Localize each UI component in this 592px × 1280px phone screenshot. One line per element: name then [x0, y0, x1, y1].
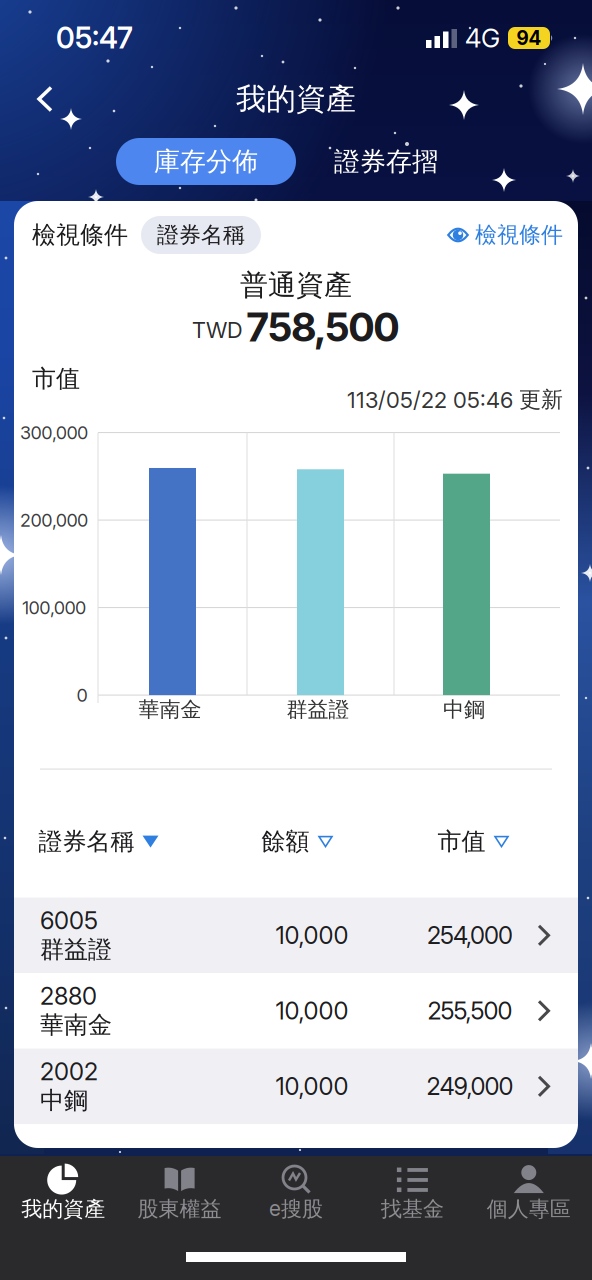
- staticText: 中鋼: [443, 697, 485, 722]
- staticText: 中鋼: [40, 1086, 88, 1115]
- staticText: 市值: [32, 364, 80, 394]
- staticText: 300,000: [20, 422, 88, 443]
- staticText: 254,000: [427, 921, 513, 949]
- button[interactable]: 證券存摺: [296, 138, 476, 185]
- staticText: 證券名稱: [38, 827, 134, 856]
- staticText: TWD: [192, 317, 243, 343]
- staticText: 華南金: [40, 1010, 112, 1040]
- staticText: 普通資產: [240, 268, 352, 302]
- button[interactable]: 6005: [14, 898, 578, 973]
- staticText: 檢視條件: [32, 220, 128, 250]
- staticText: 05:47: [56, 21, 133, 55]
- button[interactable]: Back: [0, 86, 53, 112]
- staticText: 4G: [465, 23, 500, 53]
- staticText: 市值: [437, 827, 485, 856]
- staticText: 100,000: [22, 597, 86, 618]
- button[interactable]: e搜股: [238, 1156, 354, 1222]
- staticText: 200,000: [20, 509, 88, 531]
- staticText: 庫存分佈: [154, 145, 258, 177]
- button[interactable]: 我的資產: [5, 1156, 121, 1222]
- button[interactable]: 證券名稱: [141, 216, 261, 254]
- button[interactable]: 餘額: [261, 827, 333, 856]
- staticText: 255,500: [427, 997, 512, 1025]
- staticText: 證券名稱: [157, 221, 245, 248]
- staticText: 249,000: [426, 1072, 513, 1100]
- staticText: 94: [516, 27, 541, 49]
- button[interactable]: 股東權益: [121, 1156, 238, 1222]
- staticText: 股東權益: [138, 1196, 222, 1222]
- staticText: 10,000: [275, 997, 348, 1025]
- staticText: 6005: [40, 906, 98, 935]
- button[interactable]: 市值: [437, 827, 509, 856]
- staticText: 檢視條件: [475, 221, 563, 248]
- staticText: 群益證: [40, 935, 112, 964]
- button[interactable]: 檢視條件: [447, 221, 563, 248]
- staticText: 群益證: [286, 697, 349, 722]
- staticText: 758,500: [246, 303, 400, 351]
- button[interactable]: 2002: [14, 1049, 578, 1124]
- staticText: 113/05/22 05:46 更新: [347, 386, 563, 413]
- button[interactable]: 證券名稱: [38, 827, 158, 856]
- staticText: 0: [76, 684, 87, 706]
- staticText: 餘額: [261, 827, 309, 856]
- staticText: e搜股: [269, 1196, 323, 1222]
- staticText: 個人專區: [487, 1196, 571, 1222]
- button[interactable]: 個人專區: [471, 1156, 587, 1222]
- staticText: 我的資產: [21, 1196, 105, 1222]
- staticText: 10,000: [275, 1072, 348, 1100]
- button[interactable]: 找基金: [354, 1156, 471, 1222]
- staticText: 2880: [40, 982, 97, 1010]
- staticText: 華南金: [138, 697, 201, 722]
- staticText: 證券存摺: [334, 145, 438, 177]
- staticText: 找基金: [381, 1196, 444, 1222]
- staticText: 2002: [40, 1057, 98, 1086]
- button[interactable]: 庫存分佈: [116, 138, 296, 185]
- staticText: 我的資產: [236, 81, 356, 117]
- button[interactable]: 2880: [14, 973, 578, 1049]
- staticText: 10,000: [275, 921, 348, 949]
